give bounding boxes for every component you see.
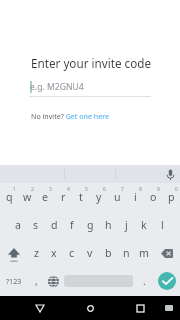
staticText: 8 xyxy=(139,186,142,193)
button[interactable]: Period xyxy=(136,267,152,295)
staticText: s xyxy=(33,218,39,232)
staticText: n xyxy=(123,246,130,260)
staticText: 4 xyxy=(67,186,70,193)
button[interactable]: Voice input xyxy=(161,165,179,183)
staticText: 3 xyxy=(49,186,52,193)
button[interactable]: i xyxy=(126,183,144,211)
button[interactable]: d xyxy=(45,211,63,239)
staticText: r xyxy=(61,190,66,204)
button[interactable]: e xyxy=(36,183,54,211)
staticText: u xyxy=(114,190,121,204)
staticText: x xyxy=(51,246,57,260)
button[interactable]: Space xyxy=(63,267,134,295)
button[interactable]: m xyxy=(135,239,153,267)
staticText: 0 xyxy=(175,186,178,193)
button[interactable]: Recent apps xyxy=(128,296,152,320)
staticText: e xyxy=(42,190,48,204)
staticText: . xyxy=(143,274,146,288)
button[interactable]: a xyxy=(9,211,27,239)
button[interactable]: Home xyxy=(78,296,102,320)
button[interactable]: k xyxy=(135,211,153,239)
button[interactable]: Back xyxy=(28,296,52,320)
button[interactable]: Change keyboard xyxy=(44,267,62,295)
button[interactable]: v xyxy=(81,239,99,267)
button[interactable]: l xyxy=(153,211,171,239)
button[interactable]: p xyxy=(162,183,180,211)
button[interactable]: Comma xyxy=(26,267,46,295)
staticText: m xyxy=(139,246,149,260)
button[interactable]: o xyxy=(144,183,162,211)
button[interactable]: n xyxy=(117,239,135,267)
staticText: p xyxy=(168,190,175,204)
staticText: 2 xyxy=(31,186,34,193)
button[interactable]: u xyxy=(108,183,126,211)
button[interactable]: s xyxy=(27,211,45,239)
staticText: c xyxy=(69,246,75,260)
staticText: d xyxy=(51,218,58,232)
button[interactable]: j xyxy=(117,211,135,239)
staticText: 5 xyxy=(85,186,88,193)
staticText: Enter your invite code xyxy=(31,55,152,71)
staticText: ?123 xyxy=(6,276,22,286)
button[interactable]: Symbols xyxy=(2,267,25,295)
staticText: a xyxy=(15,218,21,232)
staticText: 1 xyxy=(13,186,16,193)
button[interactable]: f xyxy=(63,211,81,239)
staticText: l xyxy=(161,218,164,232)
staticText: 6 xyxy=(103,186,106,193)
button[interactable]: w xyxy=(18,183,36,211)
staticText: h xyxy=(105,218,112,232)
staticText: j xyxy=(125,218,128,232)
staticText: t xyxy=(79,190,83,204)
button[interactable]: Switch keyboard xyxy=(157,296,180,320)
staticText: No invite? Get one here xyxy=(31,111,109,121)
button[interactable]: Backspace xyxy=(153,239,180,267)
button[interactable]: Shift xyxy=(0,239,27,267)
button[interactable]: h xyxy=(99,211,117,239)
staticText: i xyxy=(134,190,137,204)
staticText: b xyxy=(105,246,112,260)
button[interactable]: z xyxy=(27,239,45,267)
staticText: w xyxy=(23,190,32,204)
staticText: v xyxy=(87,246,93,260)
button[interactable]: Done xyxy=(153,267,180,295)
button[interactable]: g xyxy=(81,211,99,239)
staticText: g xyxy=(87,218,94,232)
staticText: k xyxy=(141,218,147,232)
staticText: 9 xyxy=(157,186,160,193)
button[interactable]: x xyxy=(45,239,63,267)
button[interactable]: t xyxy=(72,183,90,211)
staticText: q xyxy=(6,190,13,204)
staticText: e.g. M2GNU4 xyxy=(30,81,84,93)
staticText: f xyxy=(70,218,74,232)
staticText: 7 xyxy=(121,186,124,193)
button[interactable]: r xyxy=(54,183,72,211)
button[interactable]: c xyxy=(63,239,81,267)
button[interactable]: No invite? Get one here xyxy=(31,111,109,121)
button[interactable]: y xyxy=(90,183,108,211)
button[interactable]: q xyxy=(0,183,18,211)
staticText: o xyxy=(150,190,157,204)
staticText: , xyxy=(35,274,38,288)
button[interactable]: b xyxy=(99,239,117,267)
staticText: y xyxy=(96,190,102,204)
staticText: z xyxy=(34,246,39,260)
